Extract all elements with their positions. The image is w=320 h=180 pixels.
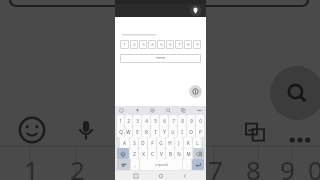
staticText: L bbox=[196, 140, 199, 146]
button[interactable]: N bbox=[175, 148, 183, 159]
button[interactable]: 6 bbox=[166, 40, 174, 49]
button[interactable]: Shift bbox=[117, 148, 129, 159]
button[interactable]: 8 bbox=[184, 40, 192, 49]
button[interactable]: Symbols bbox=[117, 159, 130, 170]
button[interactable]: 5 bbox=[157, 40, 165, 49]
staticText: 4 bbox=[145, 118, 148, 124]
staticText: espanol bbox=[155, 162, 168, 167]
button[interactable]: , bbox=[131, 159, 139, 170]
staticText: M bbox=[186, 151, 191, 157]
button[interactable]: R bbox=[142, 126, 150, 137]
button[interactable]: Settings bbox=[149, 107, 156, 114]
button[interactable]: 5 bbox=[151, 115, 159, 126]
staticText: 2 bbox=[127, 118, 130, 124]
button[interactable]: L bbox=[193, 137, 201, 148]
button[interactable]: C bbox=[148, 148, 156, 159]
button[interactable]: G bbox=[157, 137, 165, 148]
button[interactable]: Home bbox=[157, 172, 165, 180]
button[interactable]: 2 bbox=[125, 115, 132, 126]
button[interactable]: Search bbox=[270, 66, 320, 120]
button[interactable]: T bbox=[151, 126, 159, 137]
staticText: 4 bbox=[151, 42, 154, 48]
button[interactable]: Search bbox=[165, 107, 172, 114]
button[interactable]: 7 bbox=[169, 115, 177, 126]
staticText: 3 bbox=[142, 42, 145, 48]
button[interactable]: . bbox=[183, 159, 191, 170]
staticText: , bbox=[134, 162, 136, 168]
staticText: E bbox=[136, 129, 139, 135]
button[interactable]: 7 bbox=[175, 40, 183, 49]
staticText: 7 bbox=[208, 152, 223, 180]
button[interactable]: I bbox=[178, 126, 186, 137]
button[interactable]: D bbox=[139, 137, 147, 148]
button[interactable]: S bbox=[130, 137, 138, 148]
staticText: 9 bbox=[190, 118, 193, 124]
staticText: U bbox=[171, 129, 175, 135]
button[interactable]: V bbox=[157, 148, 165, 159]
button[interactable] bbox=[120, 54, 201, 63]
staticText: 6 bbox=[163, 118, 166, 124]
button[interactable]: A bbox=[120, 137, 129, 148]
button[interactable]: 4 bbox=[142, 115, 150, 126]
staticText: T bbox=[154, 129, 157, 135]
button[interactable]: Backspace bbox=[193, 148, 204, 159]
staticText: P bbox=[199, 129, 202, 135]
button[interactable]: J bbox=[175, 137, 183, 148]
button[interactable]: U bbox=[169, 126, 177, 137]
button[interactable]: 3 bbox=[139, 40, 147, 49]
staticText: 5 bbox=[154, 118, 157, 124]
button[interactable]: Recents bbox=[132, 172, 140, 180]
button[interactable]: P bbox=[196, 126, 204, 137]
button[interactable]: 2 bbox=[130, 40, 138, 49]
button[interactable]: B bbox=[166, 148, 174, 159]
button[interactable]: W bbox=[125, 126, 132, 137]
button[interactable]: 0 bbox=[196, 115, 204, 126]
button[interactable]: Translate bbox=[180, 107, 187, 114]
staticText: 1 bbox=[24, 152, 39, 180]
staticText: 3 bbox=[116, 152, 131, 180]
staticText: 1 bbox=[123, 42, 126, 48]
button[interactable]: 9 bbox=[187, 115, 195, 126]
staticText: 4 bbox=[160, 152, 175, 180]
staticText: 8 bbox=[181, 118, 184, 124]
staticText: Y bbox=[163, 129, 166, 135]
staticText: W bbox=[126, 129, 131, 135]
button[interactable]: M bbox=[184, 148, 192, 159]
button[interactable]: Y bbox=[160, 126, 168, 137]
staticText: D bbox=[141, 140, 145, 146]
button[interactable]: Z bbox=[130, 148, 138, 159]
button[interactable]: Location bbox=[190, 5, 201, 16]
staticText: B bbox=[169, 151, 172, 157]
button[interactable]: 6 bbox=[160, 115, 168, 126]
button[interactable]: More bbox=[196, 107, 203, 114]
other: Voice typing bbox=[74, 118, 98, 142]
staticText: J bbox=[178, 140, 180, 146]
staticText: O bbox=[189, 129, 193, 135]
staticText: F bbox=[151, 140, 154, 146]
staticText: 1 bbox=[119, 118, 122, 124]
button[interactable]: 4 bbox=[148, 40, 156, 49]
button[interactable]: Emoji bbox=[118, 107, 125, 114]
button[interactable]: F bbox=[148, 137, 156, 148]
button[interactable]: Back bbox=[181, 172, 189, 180]
staticText: Q bbox=[119, 129, 123, 135]
button[interactable]: 3 bbox=[133, 115, 141, 126]
button[interactable]: E bbox=[133, 126, 141, 137]
staticText: 5 bbox=[160, 42, 163, 48]
button[interactable]: Enter bbox=[192, 159, 204, 170]
button[interactable]: X bbox=[139, 148, 147, 159]
staticText: K bbox=[187, 140, 190, 146]
button[interactable]: espanol bbox=[140, 159, 182, 170]
button[interactable]: 8 bbox=[178, 115, 186, 126]
button[interactable]: Q bbox=[117, 126, 124, 137]
button[interactable]: K bbox=[184, 137, 192, 148]
button[interactable]: H bbox=[166, 137, 174, 148]
button[interactable]: Voice typing bbox=[134, 107, 141, 114]
button[interactable]: 1 bbox=[120, 40, 129, 49]
button[interactable]: Voice input bbox=[189, 85, 202, 98]
button[interactable]: O bbox=[187, 126, 195, 137]
button[interactable]: 9 bbox=[193, 40, 201, 49]
other: Translate bbox=[245, 122, 265, 142]
staticText: R bbox=[145, 129, 148, 135]
button[interactable]: 1 bbox=[117, 115, 124, 126]
